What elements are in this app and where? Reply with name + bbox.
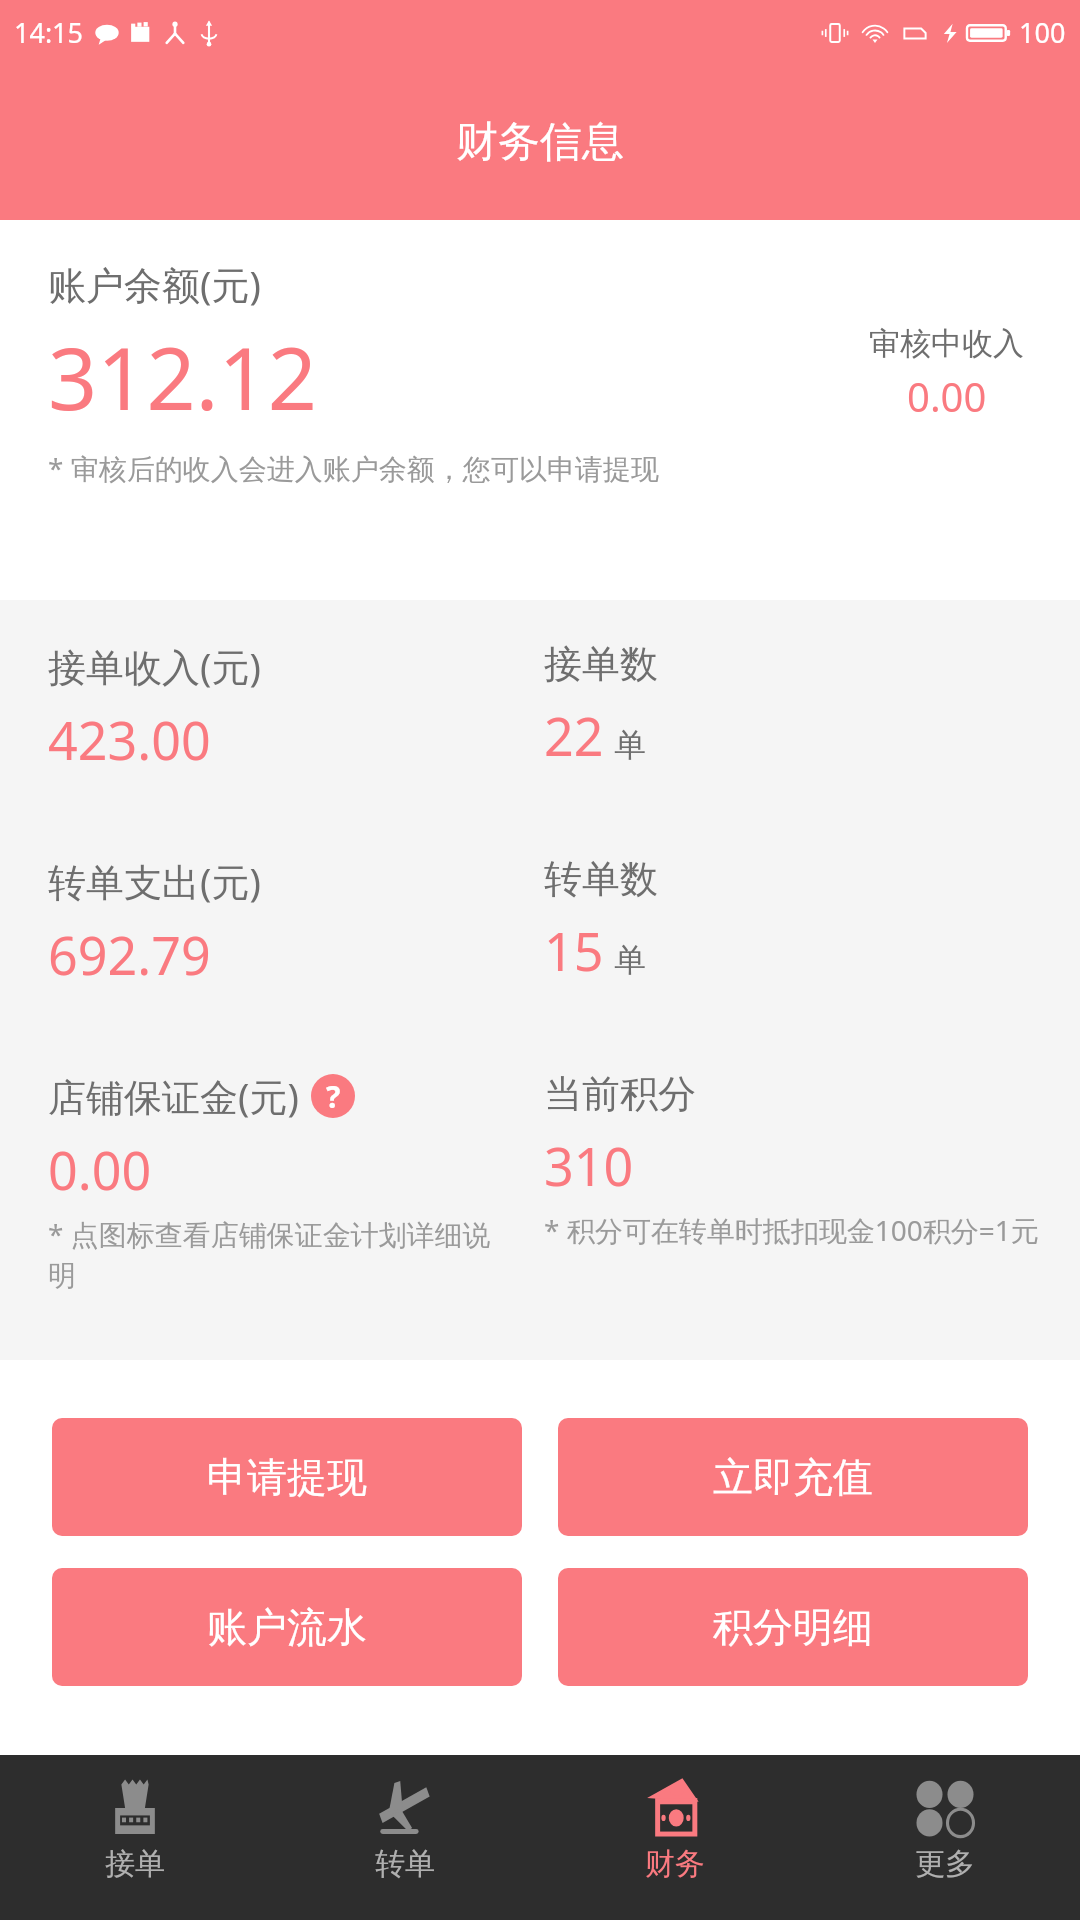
staticText: 审核中收入 [869, 324, 1024, 363]
button[interactable]: 接单 [0, 1755, 270, 1920]
staticText: 接单数 [544, 640, 658, 688]
staticText: 423.00 [48, 704, 211, 775]
button[interactable]: 财务 [540, 1755, 810, 1920]
staticText: 100 [1019, 14, 1066, 51]
staticText: 更多 [915, 1845, 975, 1883]
staticText: 账户余额(元) [48, 258, 261, 310]
staticText: 申请提现 [207, 1452, 367, 1502]
staticText: 接单 [105, 1845, 165, 1883]
button[interactable]: 转单 [270, 1755, 540, 1920]
staticText: 0.00 [907, 369, 987, 423]
staticText: 财务 [645, 1845, 705, 1883]
staticText: 当前积分 [544, 1070, 696, 1118]
staticText: 接单收入(元) [48, 640, 261, 692]
staticText: * 点图标查看店铺保证金计划详细说明 [48, 1215, 514, 1293]
staticText: 单 [614, 725, 646, 765]
staticText: 单 [614, 940, 646, 980]
staticText: 积分明细 [713, 1602, 873, 1652]
button[interactable]: 更多 [810, 1755, 1080, 1920]
button[interactable]: 立即充值 [558, 1418, 1028, 1536]
button[interactable]: 账户流水 [52, 1568, 522, 1686]
staticText: 0.00 [48, 1134, 152, 1205]
staticText: 账户流水 [207, 1602, 367, 1652]
staticText: 15 [544, 915, 604, 986]
staticText: 转单支出(元) [48, 855, 261, 907]
staticText: * 审核后的收入会进入账户余额，您可以申请提现 [48, 449, 659, 487]
staticText: ? [326, 1076, 341, 1117]
staticText: * 积分可在转单时抵扣现金100积分=1元 [544, 1211, 1039, 1249]
staticText: 立即充值 [713, 1452, 873, 1502]
staticText: 310 [544, 1130, 634, 1201]
button[interactable]: 申请提现 [52, 1418, 522, 1536]
staticText: 22 [544, 700, 604, 771]
staticText: 财务信息 [456, 116, 624, 169]
staticText: 312.12 [48, 318, 318, 435]
button[interactable]: 帮助 [311, 1074, 355, 1118]
staticText: 转单数 [544, 855, 658, 903]
staticText: 692.79 [48, 919, 211, 990]
staticText: 店铺保证金(元) [48, 1070, 299, 1122]
staticText: 转单 [375, 1845, 435, 1883]
staticText: 14:15 [14, 14, 84, 51]
button[interactable]: 积分明细 [558, 1568, 1028, 1686]
